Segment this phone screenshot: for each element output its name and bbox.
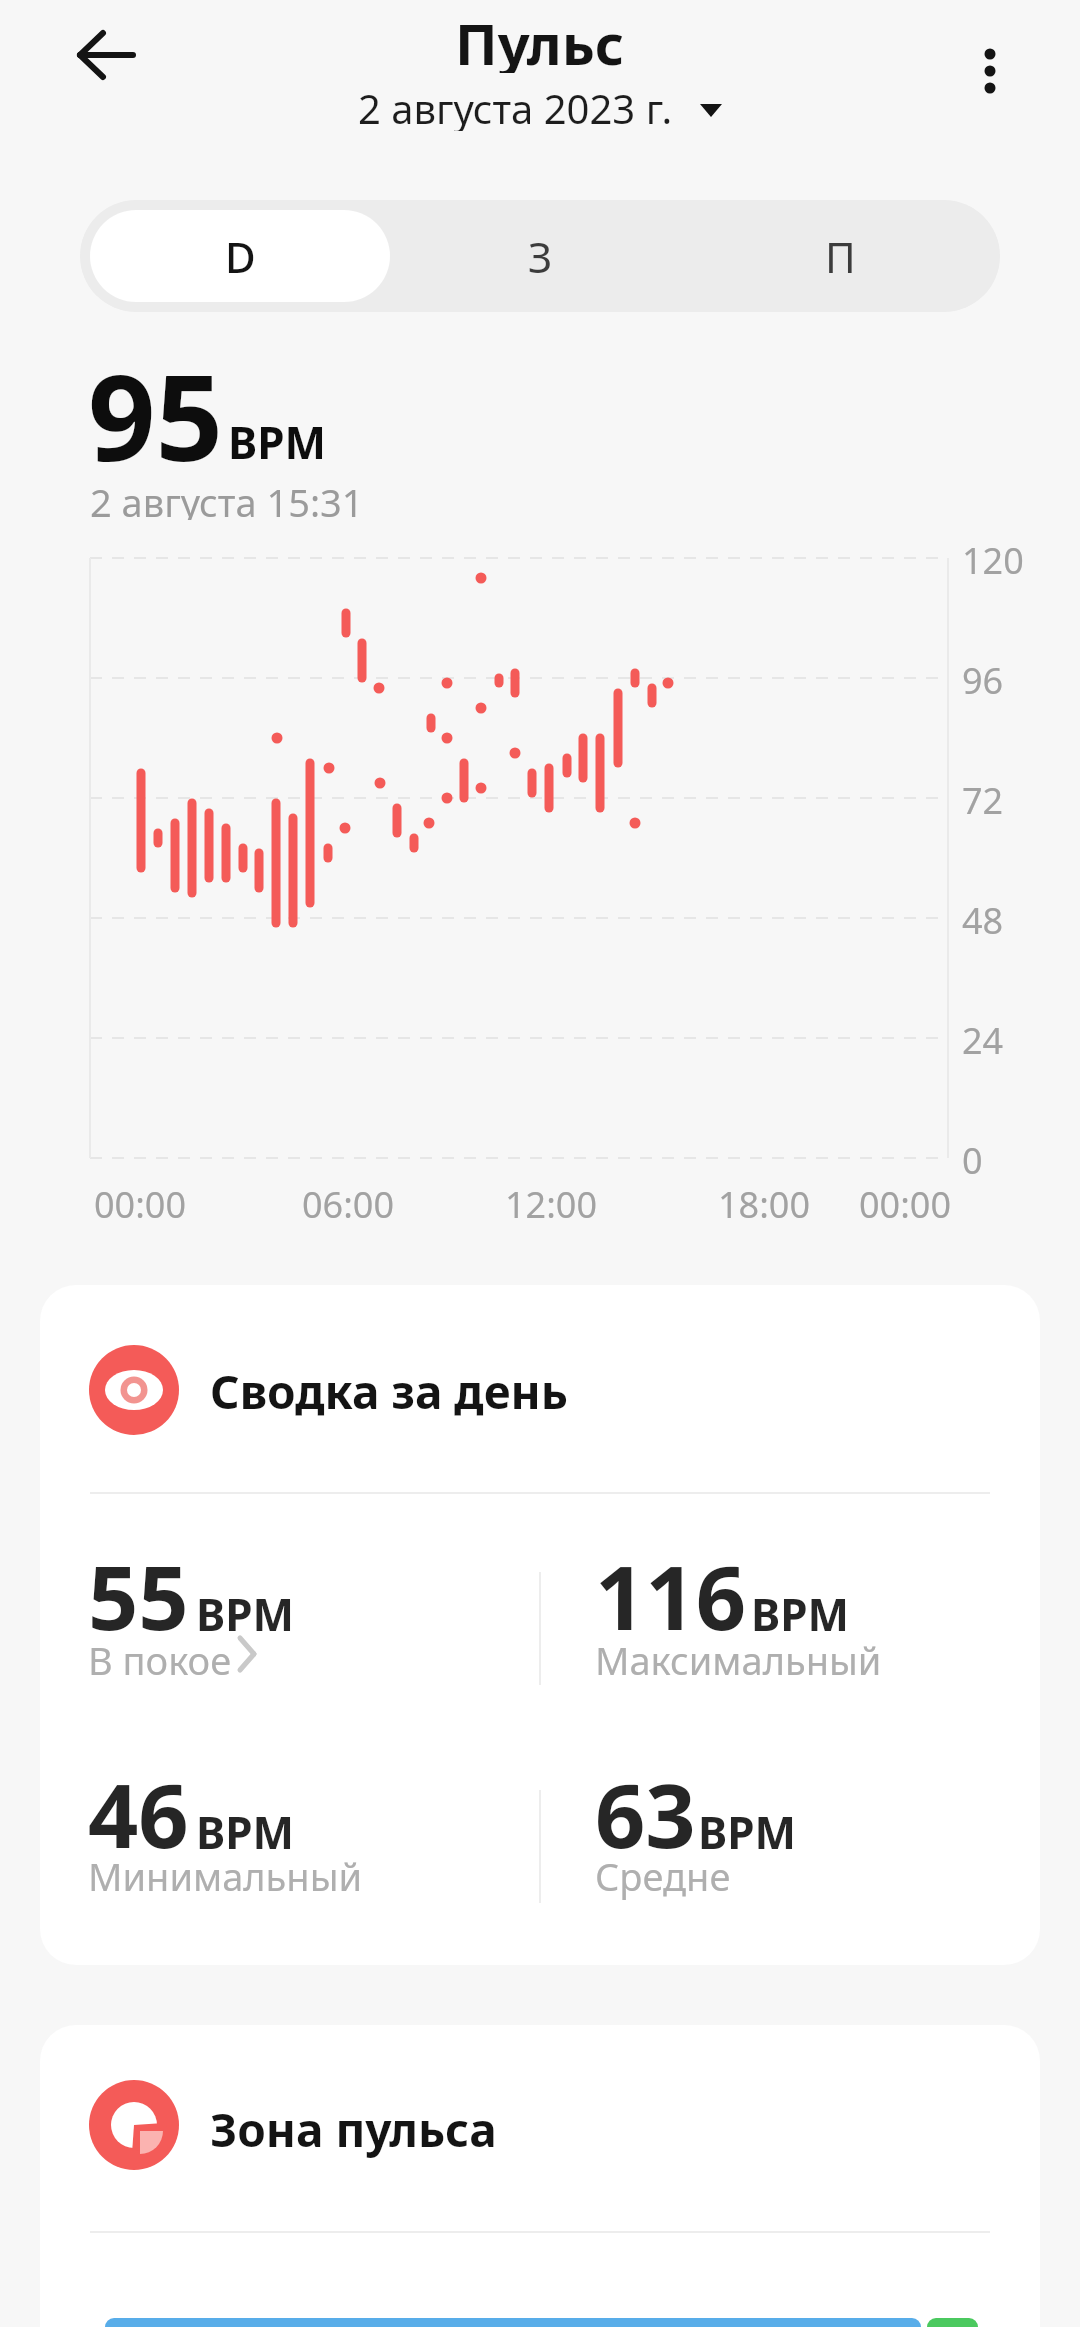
staticText: 63 <box>595 1754 696 1864</box>
staticText: 2 августа 15:31 <box>90 476 364 520</box>
staticText: 96 <box>962 656 1004 700</box>
button[interactable]: D <box>90 210 390 302</box>
button[interactable]: 2 августа 2023 г. <box>330 81 750 131</box>
button[interactable] <box>60 20 150 90</box>
button[interactable] <box>950 30 1030 110</box>
staticText: 116 <box>595 1536 747 1646</box>
button[interactable]: В покое <box>88 1634 348 1684</box>
staticText: 00:00 <box>94 1180 187 1224</box>
staticText: Пульс <box>455 5 625 73</box>
staticText: З <box>528 228 553 285</box>
staticText: 72 <box>962 776 1004 820</box>
button[interactable]: П <box>690 210 990 302</box>
staticText: Максимальный <box>595 1634 882 1684</box>
button[interactable]: З <box>390 210 690 302</box>
staticText: Минимальный <box>88 1850 363 1900</box>
staticText: 00:00 <box>859 1180 952 1224</box>
staticText: 120 <box>962 536 1024 580</box>
staticText: 12:00 <box>505 1180 598 1224</box>
staticText: Средне <box>595 1850 731 1900</box>
staticText: 2 августа 2023 г. <box>358 81 673 131</box>
staticText: 24 <box>962 1016 1004 1060</box>
staticText: 18:00 <box>718 1180 811 1224</box>
staticText: В покое <box>88 1634 232 1684</box>
staticText: BPM <box>698 1802 797 1854</box>
staticText: Сводка за день <box>210 1360 568 1420</box>
staticText: П <box>825 228 856 285</box>
staticText: Зона пульса <box>210 2098 497 2158</box>
staticText: BPM <box>228 412 327 468</box>
staticText: 55 <box>88 1536 189 1646</box>
staticText: BPM <box>196 1802 295 1854</box>
staticText: 06:00 <box>302 1180 395 1224</box>
staticText: 95 <box>88 335 223 485</box>
staticText: BPM <box>196 1584 295 1636</box>
staticText: D <box>225 228 256 285</box>
staticText: 48 <box>962 896 1004 940</box>
staticText: 46 <box>88 1754 189 1864</box>
staticText: 0 <box>962 1136 983 1180</box>
staticText: BPM <box>751 1584 850 1636</box>
